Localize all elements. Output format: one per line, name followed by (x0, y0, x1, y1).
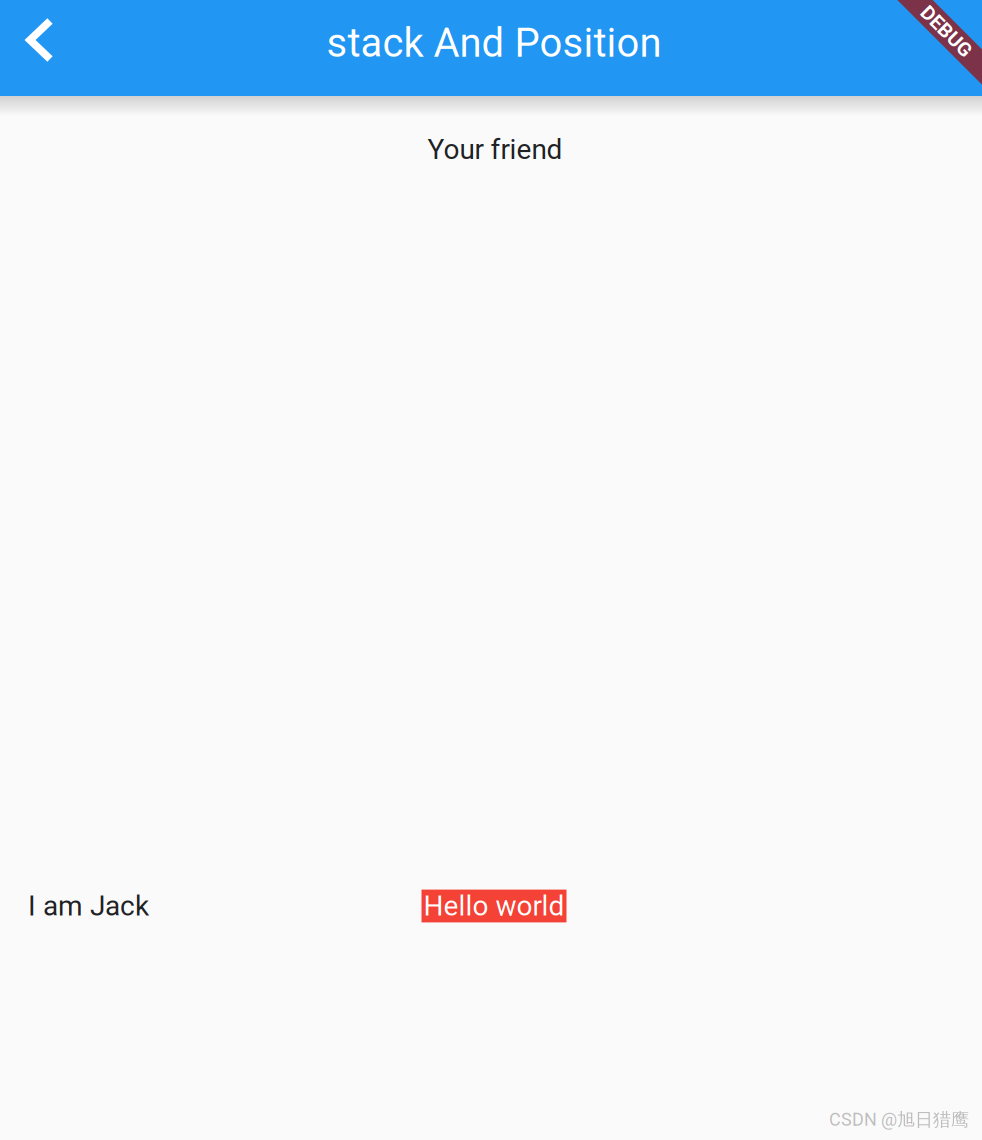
staticText: Hello world (423, 890, 564, 922)
staticText: stack And Position (326, 20, 661, 66)
staticText: I am Jack (28, 890, 149, 922)
staticText: CSDN @旭日猎鹰 (829, 1108, 969, 1131)
button[interactable]: Back (0, 0, 96, 96)
staticText: Your friend (427, 133, 562, 166)
staticText: DEBUG (914, 20, 978, 43)
